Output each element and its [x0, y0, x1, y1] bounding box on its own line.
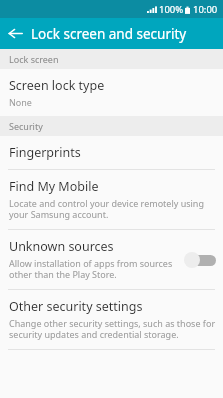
staticText: Unknown sources — [9, 238, 114, 255]
staticText: Other security settings — [9, 298, 143, 315]
staticText: 100% — [159, 3, 184, 16]
button[interactable]: Fingerprints — [0, 136, 223, 169]
button[interactable]: Screen lock type — [0, 69, 223, 116]
staticText: Lock screen — [9, 53, 59, 65]
button[interactable]: Unknown sources, off — [184, 251, 216, 269]
staticText: Lock screen and security — [31, 25, 187, 43]
button[interactable]: Other security settings — [0, 290, 223, 349]
staticText: 10:00 — [193, 3, 218, 16]
button[interactable]: Find My Mobile — [0, 170, 223, 229]
staticText: Locate and control your device remotely … — [9, 197, 216, 221]
staticText: Find My Mobile — [9, 178, 99, 195]
staticText: Security — [9, 120, 43, 132]
staticText: Change other security settings, such as … — [9, 317, 216, 341]
staticText: None — [9, 96, 32, 108]
button[interactable]: Unknown sources — [0, 230, 223, 289]
staticText: Screen lock type — [9, 77, 105, 94]
staticText: Fingerprints — [9, 144, 81, 161]
staticText: Allow installation of apps from sources … — [9, 257, 179, 281]
button[interactable]: Navigate up — [0, 18, 31, 49]
